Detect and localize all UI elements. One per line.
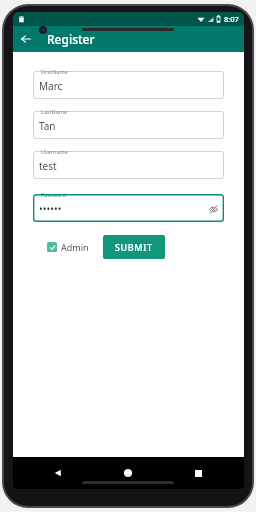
staticText: LastName xyxy=(41,108,68,115)
button[interactable]: Home xyxy=(115,460,141,486)
button[interactable]: FirstName xyxy=(33,71,224,99)
button[interactable]: Back xyxy=(13,26,39,52)
staticText: SUBMIT xyxy=(115,241,153,253)
staticText: test xyxy=(39,159,57,173)
button[interactable]: LastName xyxy=(33,111,224,139)
staticText: •••••• xyxy=(39,202,62,216)
staticText: Password xyxy=(41,191,66,198)
button[interactable]: Recent apps xyxy=(185,460,211,486)
staticText: Username xyxy=(41,148,68,155)
staticText: Register xyxy=(47,31,95,47)
button[interactable]: Username xyxy=(33,151,224,179)
button[interactable]: Back xyxy=(45,460,71,486)
staticText: FirstName xyxy=(41,68,68,75)
staticText: Marc xyxy=(39,79,63,93)
staticText: 8:07 xyxy=(224,14,239,24)
button[interactable]: Password xyxy=(33,194,224,222)
button[interactable]: Toggle password visibility xyxy=(206,202,220,216)
staticText: Admin xyxy=(61,241,89,253)
staticText: Tan xyxy=(39,119,56,133)
button[interactable]: Admin xyxy=(47,241,89,253)
button[interactable]: SUBMIT xyxy=(103,235,165,259)
